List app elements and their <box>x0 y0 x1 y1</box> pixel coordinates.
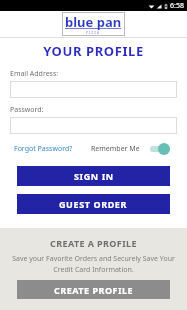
staticText: blue pan <box>65 13 122 31</box>
staticText: GUEST ORDER <box>59 198 128 210</box>
staticText: 6:58 <box>170 1 184 11</box>
button[interactable]: SIGN IN <box>17 166 170 186</box>
staticText: YOUR PROFILE <box>0 42 187 60</box>
staticText: Email Address: <box>10 69 59 79</box>
staticText: CREATE PROFILE <box>54 284 134 296</box>
button[interactable]: Forgot Password? <box>14 142 73 156</box>
button[interactable]: GUEST ORDER <box>17 194 170 214</box>
staticText: CREATE A PROFILE <box>50 237 137 249</box>
button[interactable] <box>10 117 177 134</box>
button[interactable]: CREATE PROFILE <box>17 280 170 299</box>
staticText: Remember Me <box>91 144 140 154</box>
button[interactable]: Remember Me toggle <box>150 143 170 155</box>
staticText: Save your Favorite Orders and Securely S… <box>6 254 181 274</box>
staticText: SIGN IN <box>74 170 114 182</box>
staticText: Password: <box>10 105 44 115</box>
staticText: PIZZA <box>86 31 101 35</box>
staticText: Forgot Password? <box>14 144 73 154</box>
button[interactable] <box>10 81 177 98</box>
